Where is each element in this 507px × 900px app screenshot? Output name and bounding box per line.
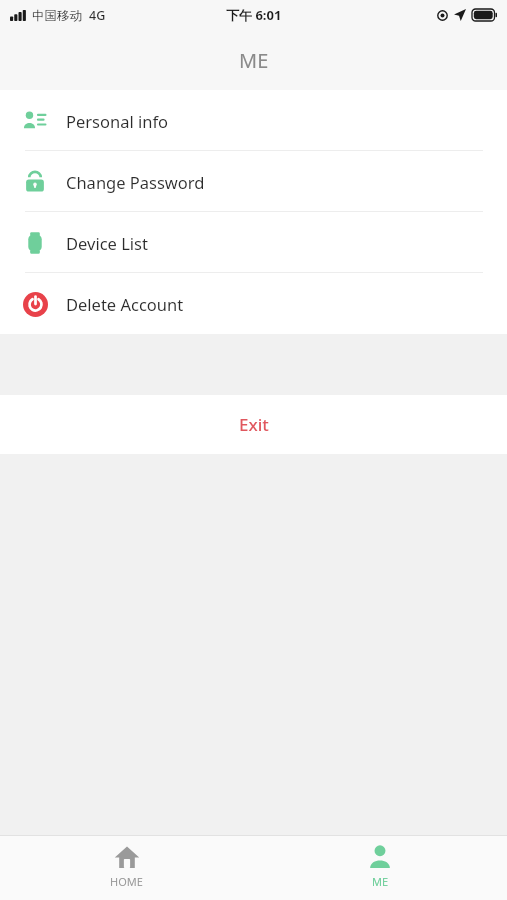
button[interactable]: HOME bbox=[0, 836, 253, 900]
staticText: Delete Account bbox=[66, 293, 184, 315]
button[interactable]: Exit bbox=[0, 395, 507, 454]
button[interactable]: Personal info bbox=[0, 90, 507, 151]
staticText: Personal info bbox=[66, 110, 169, 132]
staticText: 中国移动 bbox=[32, 8, 82, 24]
staticText: Device List bbox=[66, 232, 148, 254]
button[interactable]: Change Password bbox=[0, 151, 507, 212]
button[interactable]: Delete Account bbox=[0, 273, 507, 334]
staticText: Change Password bbox=[66, 171, 205, 193]
staticText: HOME bbox=[110, 874, 143, 889]
staticText: 4G bbox=[89, 7, 106, 24]
staticText: 下午 6:01 bbox=[226, 6, 282, 24]
button[interactable]: Device List bbox=[0, 212, 507, 273]
staticText: ME bbox=[239, 47, 269, 74]
staticText: ME bbox=[372, 874, 389, 889]
staticText: Exit bbox=[239, 413, 269, 436]
button[interactable]: ME bbox=[253, 836, 507, 900]
